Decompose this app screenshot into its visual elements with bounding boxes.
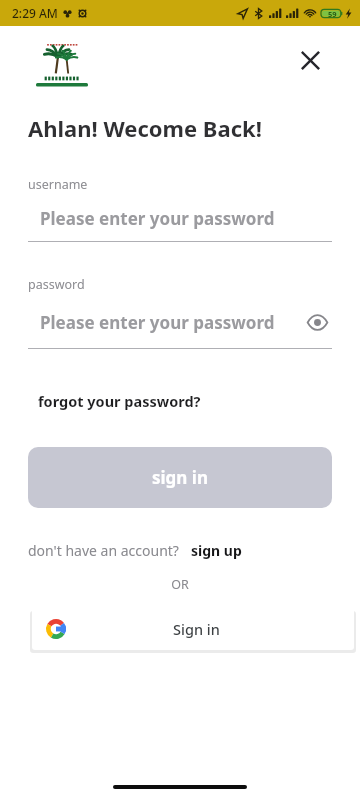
staticText: username bbox=[28, 176, 88, 193]
button[interactable]: Close bbox=[288, 38, 332, 82]
staticText: Sign in bbox=[173, 619, 220, 639]
button[interactable]: Show password bbox=[302, 307, 332, 337]
staticText: sign up bbox=[191, 541, 242, 560]
staticText: forgot your password? bbox=[38, 391, 201, 411]
staticText: password bbox=[28, 276, 85, 293]
button[interactable]: Please enter your password bbox=[28, 307, 332, 337]
staticText: 59 bbox=[328, 9, 337, 19]
staticText: 2:29 AM bbox=[12, 5, 58, 21]
staticText: OR bbox=[0, 576, 360, 593]
button[interactable]: sign up bbox=[187, 537, 246, 564]
staticText: sign in bbox=[152, 466, 208, 489]
button[interactable]: Sign in bbox=[32, 608, 354, 650]
button[interactable]: Please enter your password bbox=[28, 207, 332, 230]
button[interactable]: forgot your password? bbox=[28, 387, 211, 415]
staticText: don't have an account? bbox=[28, 541, 179, 560]
button[interactable] bbox=[28, 32, 96, 90]
staticText: Please enter your password bbox=[40, 311, 302, 334]
staticText: Ahlan! Wecome Back! bbox=[28, 113, 262, 143]
staticText: Please enter your password bbox=[40, 207, 332, 230]
button[interactable]: sign in bbox=[28, 447, 332, 508]
